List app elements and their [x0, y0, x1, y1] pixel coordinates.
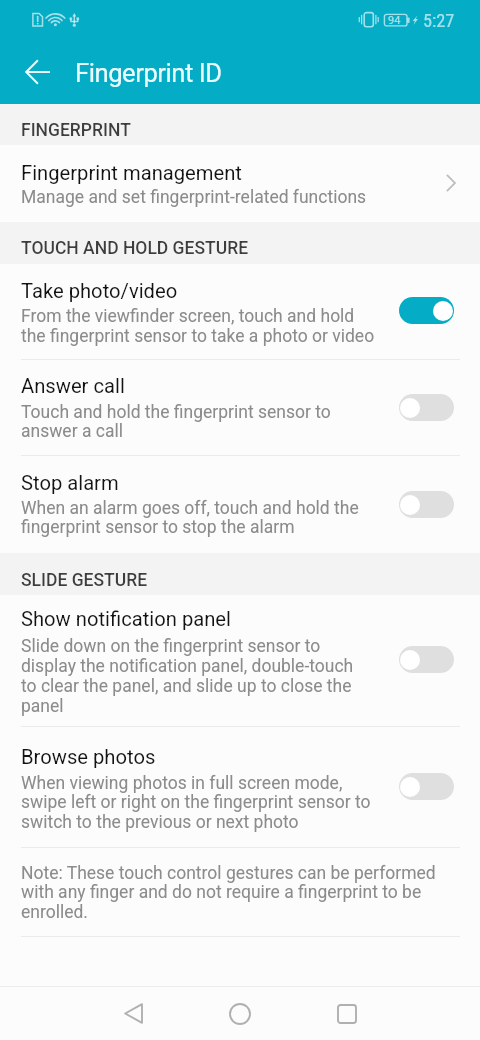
staticText: Show notification panel [21, 607, 231, 631]
staticText: answer a call [21, 421, 123, 442]
button[interactable] [0, 144, 480, 222]
button[interactable]: Switch on [399, 297, 454, 324]
button[interactable]: Switch off [399, 773, 454, 800]
button[interactable] [0, 595, 480, 726]
staticText: the fingerprint sensor to take a photo o… [21, 326, 375, 347]
staticText: Answer call [21, 374, 125, 398]
button[interactable]: Recents [311, 987, 383, 1040]
staticText: FINGERPRINT [21, 120, 131, 141]
button[interactable] [0, 263, 480, 359]
button[interactable] [0, 360, 480, 455]
button[interactable]: Home [204, 987, 276, 1040]
button[interactable]: Switch off [399, 646, 454, 673]
button[interactable]: Back [13, 48, 61, 96]
staticText: 94 [388, 14, 401, 27]
staticText: with any finger and do not require a fin… [21, 882, 422, 903]
staticText: panel [21, 696, 64, 717]
staticText: 5:27 [423, 10, 455, 31]
staticText: fingerprint sensor to stop the alarm [21, 517, 295, 538]
staticText: Stop alarm [21, 471, 119, 495]
staticText: enrolled. [21, 902, 88, 923]
staticText: display the notification panel, double-t… [21, 656, 354, 677]
staticText: Fingerprint management [21, 161, 242, 185]
staticText: When an alarm goes off, touch and hold t… [21, 498, 359, 519]
button[interactable] [0, 727, 480, 847]
staticText: Manage and set fingerprint-related funct… [21, 187, 367, 208]
staticText: When viewing photos in full screen mode, [21, 773, 343, 794]
button[interactable]: Switch off [399, 491, 454, 518]
staticText: to clear the panel, and slide up to clos… [21, 676, 352, 697]
staticText: switch to the previous or next photo [21, 812, 299, 833]
staticText: Slide down on the fingerprint sensor to [21, 636, 321, 657]
staticText: TOUCH AND HOLD GESTURE [21, 238, 249, 259]
staticText: Browse photos [21, 745, 156, 769]
staticText: Touch and hold the fingerprint sensor to [21, 402, 331, 423]
staticText: Fingerprint ID [75, 58, 222, 88]
staticText: Note: These touch control gestures can b… [21, 863, 436, 884]
button[interactable] [0, 456, 480, 553]
staticText: swipe left or right on the fingerprint s… [21, 792, 371, 813]
staticText: SLIDE GESTURE [21, 570, 148, 591]
button[interactable]: Back [97, 987, 169, 1040]
staticText: Take photo/video [21, 279, 178, 303]
staticText: From the viewfinder screen, touch and ho… [21, 306, 355, 327]
button[interactable]: Switch off [399, 394, 454, 421]
